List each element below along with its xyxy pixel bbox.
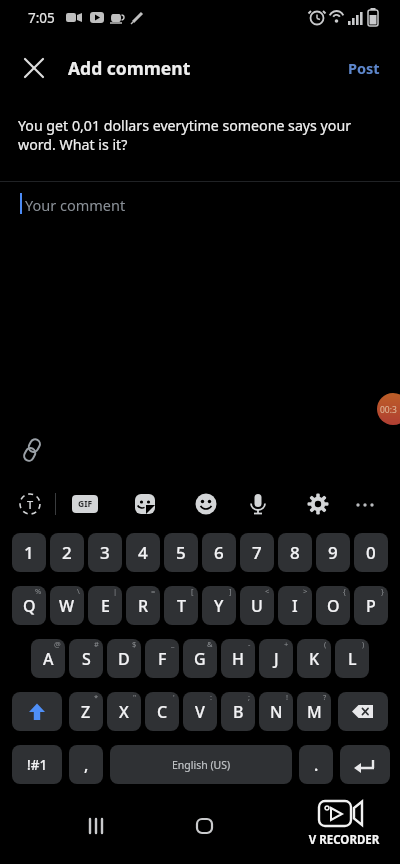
button[interactable]: English (US)	[110, 745, 292, 784]
staticText: >	[303, 586, 308, 596]
staticText: &	[207, 639, 213, 649]
staticText: 3	[100, 541, 110, 564]
button[interactable]: -	[221, 639, 255, 678]
staticText: G	[194, 648, 206, 670]
staticText: F	[158, 648, 167, 670]
button[interactable]: 4	[126, 533, 160, 572]
staticText: ?	[323, 692, 327, 702]
staticText: !#1	[27, 756, 48, 774]
staticText: You get 0,01 dollars everytime someone s…	[18, 116, 352, 135]
button[interactable]: 9	[316, 533, 350, 572]
button[interactable]: $	[107, 639, 141, 678]
button[interactable]: (	[297, 639, 331, 678]
staticText: (	[324, 639, 327, 649]
staticText: B	[233, 701, 244, 723]
button[interactable]: &	[183, 639, 217, 678]
staticText: 7	[252, 541, 262, 564]
button[interactable]	[244, 490, 272, 518]
button[interactable]: T	[12, 486, 48, 522]
button[interactable]: "	[107, 692, 141, 731]
button[interactable]: !	[259, 692, 293, 731]
button[interactable]: >	[278, 586, 312, 625]
button[interactable]: 8	[278, 533, 312, 572]
staticText: 8	[290, 541, 300, 564]
button[interactable]: GIF	[72, 495, 98, 513]
button[interactable]: 1	[12, 533, 46, 572]
staticText: T	[177, 595, 186, 617]
button[interactable]	[350, 490, 380, 520]
staticText: '	[173, 692, 175, 702]
staticText: English (US)	[172, 758, 231, 772]
staticText: #	[94, 639, 99, 649]
button[interactable]: :	[183, 692, 217, 731]
button[interactable]: +	[259, 639, 293, 678]
staticText: 4	[138, 541, 148, 564]
button[interactable]: ]	[202, 586, 236, 625]
button[interactable]: 6	[202, 533, 236, 572]
button[interactable]: ,	[69, 745, 103, 784]
button[interactable]	[192, 490, 220, 518]
button[interactable]: #	[69, 639, 103, 678]
button[interactable]	[304, 490, 332, 518]
button[interactable]: 0	[354, 533, 388, 572]
staticText: Post	[348, 58, 380, 78]
button[interactable]: V RECORDER	[296, 796, 392, 852]
button[interactable]	[13, 431, 51, 469]
staticText: GIF	[78, 498, 93, 510]
button[interactable]	[131, 490, 159, 518]
button[interactable]: 2	[50, 533, 84, 572]
staticText: :	[210, 692, 213, 702]
button[interactable]: [	[164, 586, 198, 625]
button[interactable]	[12, 692, 62, 731]
button[interactable]: _	[145, 639, 179, 678]
button[interactable]	[340, 745, 390, 784]
staticText: K	[309, 648, 320, 670]
button[interactable]: {	[316, 586, 350, 625]
button[interactable]: 00:3	[377, 393, 400, 425]
staticText: [	[191, 586, 194, 596]
button[interactable]	[14, 48, 54, 88]
button[interactable]: ?	[297, 692, 331, 731]
staticText: {	[343, 586, 346, 596]
staticText: D	[118, 648, 130, 670]
staticText: Add comment	[68, 56, 191, 80]
button[interactable]: .	[299, 745, 333, 784]
button[interactable]	[338, 692, 388, 731]
staticText: L	[348, 648, 357, 670]
staticText: ]	[229, 586, 232, 596]
button[interactable]: @	[31, 639, 65, 678]
staticText: R	[138, 595, 149, 617]
button[interactable]: '	[145, 692, 179, 731]
staticText: Q	[23, 595, 36, 617]
staticText: \	[77, 586, 80, 596]
button[interactable]: |	[88, 586, 122, 625]
staticText: 6	[214, 541, 224, 564]
staticText: @	[54, 639, 61, 649]
button[interactable]: Your comment	[25, 195, 126, 215]
button[interactable]: )	[335, 639, 369, 678]
button[interactable]	[184, 806, 224, 846]
staticText: T	[27, 497, 34, 512]
button[interactable]	[76, 806, 116, 846]
staticText: $	[132, 639, 137, 649]
staticText: |	[113, 586, 118, 596]
button[interactable]: %	[12, 586, 46, 625]
staticText: A	[43, 648, 54, 670]
button[interactable]: 7	[240, 533, 274, 572]
staticText: !	[286, 692, 289, 702]
button[interactable]: <	[240, 586, 274, 625]
staticText: E	[101, 595, 110, 617]
staticText: -	[248, 639, 251, 649]
staticText: 1	[24, 541, 34, 564]
button[interactable]: 5	[164, 533, 198, 572]
staticText: <	[265, 586, 270, 596]
button[interactable]: Post	[336, 50, 392, 86]
button[interactable]: *	[69, 692, 103, 731]
button[interactable]: 3	[88, 533, 122, 572]
staticText: 5	[176, 541, 186, 564]
button[interactable]: ;	[221, 692, 255, 731]
button[interactable]: }	[354, 586, 388, 625]
button[interactable]: \	[50, 586, 84, 625]
button[interactable]: !#1	[12, 745, 62, 784]
button[interactable]: =	[126, 586, 160, 625]
